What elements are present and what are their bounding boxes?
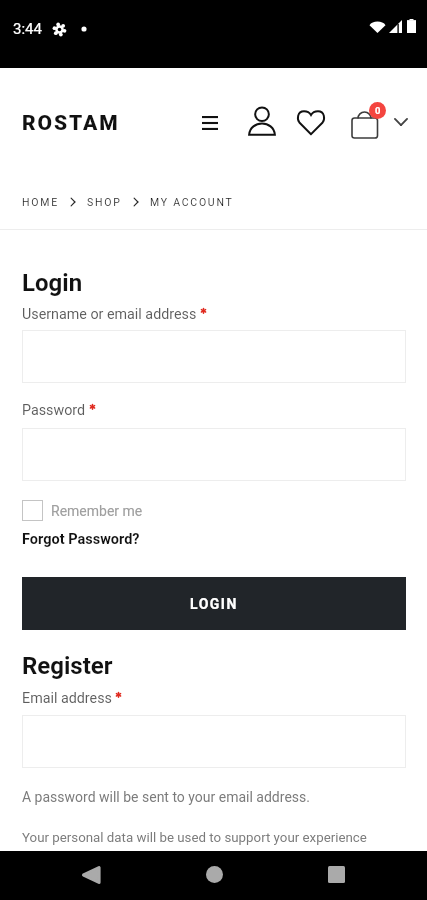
staticText: LOGIN <box>190 596 238 612</box>
button[interactable]: Recents <box>315 853 357 895</box>
staticText: HOME <box>22 196 59 208</box>
button[interactable] <box>22 428 406 481</box>
staticText: Register <box>22 652 113 680</box>
staticText: SHOP <box>87 196 122 208</box>
staticText: A password will be sent to your email ad… <box>22 789 310 805</box>
button[interactable]: Expand <box>390 111 411 132</box>
staticText: Email address <box>22 690 112 707</box>
button[interactable]: Forgot Password? <box>22 531 140 548</box>
staticText: Username or email address <box>22 306 197 323</box>
button[interactable] <box>22 715 406 768</box>
staticText: MY ACCOUNT <box>150 196 234 208</box>
button[interactable]: Remember me <box>22 500 143 521</box>
button[interactable]: Back <box>69 854 111 896</box>
staticText: ROSTAM <box>22 111 120 136</box>
button[interactable]: Home <box>193 853 235 895</box>
staticText: 3:44 <box>13 20 42 38</box>
button[interactable]: LOGIN <box>22 577 406 630</box>
button[interactable]: SHOP <box>87 196 122 208</box>
button[interactable]: MY ACCOUNT <box>150 196 234 208</box>
staticText: Remember me <box>51 503 143 519</box>
button[interactable]: Wishlist <box>294 105 328 139</box>
staticText: 0 <box>375 105 381 116</box>
button[interactable]: Cart <box>347 103 382 138</box>
staticText: Login <box>22 269 83 297</box>
staticText: Password <box>22 402 86 419</box>
button[interactable] <box>22 330 406 383</box>
button[interactable]: HOME <box>22 196 59 208</box>
staticText: Forgot Password? <box>22 531 140 548</box>
staticText: Your personal data will be used to suppo… <box>22 830 367 846</box>
button[interactable]: Menu <box>193 106 227 140</box>
button[interactable]: Account <box>245 104 279 138</box>
